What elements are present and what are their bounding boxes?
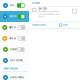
staticText: SM-T230	[38, 7, 46, 10]
button[interactable]: Wi-Fi	[0, 0, 29, 11]
staticText: CONNECT AND SHARE	[3, 68, 18, 70]
button[interactable]: SCAN	[59, 24, 80, 27]
staticText: Nearby devices	[10, 76, 24, 79]
button[interactable]: SM-T230	[29, 7, 80, 22]
staticText: devices.	[38, 16, 44, 18]
button[interactable]: Flight mode	[0, 22, 29, 33]
staticText: Bluetooth	[9, 15, 17, 18]
staticText: AVAILABLE DEVICES	[32, 24, 46, 26]
button[interactable]: Location	[0, 44, 29, 55]
staticText: Data usage	[9, 37, 18, 40]
staticText: SCAN	[63, 24, 67, 26]
button[interactable]: Bluetooth	[0, 11, 29, 22]
staticText: More settings	[10, 59, 23, 62]
staticText: Wi-Fi	[10, 4, 14, 7]
button[interactable]: Nearby devices	[0, 72, 29, 80]
staticText: Not visible to other devices.	[38, 10, 58, 12]
button[interactable]: Data usage	[0, 33, 29, 44]
button[interactable]: More settings	[0, 55, 29, 66]
staticText: MY DEVICE	[32, 2, 40, 4]
staticText: Flight mode	[9, 26, 18, 29]
staticText: Tap to make visible to nearby	[38, 13, 60, 15]
staticText: Location	[10, 48, 17, 51]
